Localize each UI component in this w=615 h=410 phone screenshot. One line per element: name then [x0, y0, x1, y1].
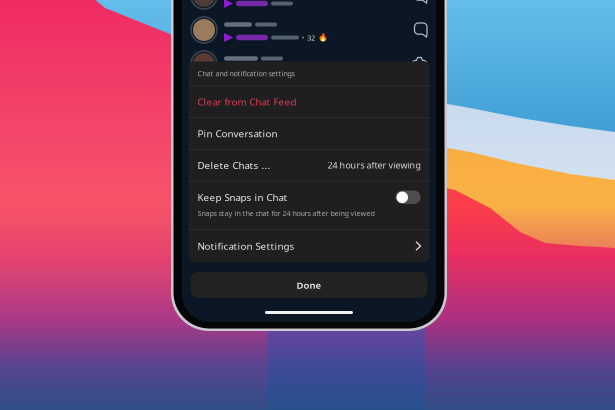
staticText: 24 hours after viewing — [327, 159, 420, 171]
button[interactable]: 32 — [182, 13, 436, 47]
staticText: Clear from Chat Feed — [197, 95, 296, 108]
button[interactable] — [182, 47, 436, 81]
staticText: Keep Snaps in Chat — [197, 191, 287, 204]
staticText: Notification Settings — [197, 239, 294, 252]
button[interactable] — [182, 81, 436, 115]
button[interactable]: Notification Settings — [188, 230, 429, 262]
button[interactable]: Keep Snaps in Chat — [188, 181, 429, 229]
button[interactable]: Delete Chats ... — [188, 150, 429, 181]
button[interactable] — [182, 0, 436, 13]
staticText: Pin Conversation — [197, 127, 277, 140]
staticText: Snaps stay in the chat for 24 hours afte… — [197, 208, 374, 218]
staticText: Delete Chats ... — [197, 159, 270, 172]
staticText: 🔥 — [318, 33, 328, 42]
button[interactable]: Done — [190, 272, 427, 298]
staticText: 32 — [307, 32, 315, 42]
staticText: Done — [296, 279, 321, 291]
button[interactable]: Clear from Chat Feed — [188, 86, 429, 117]
staticText: Chat and notification settings — [197, 69, 294, 78]
button[interactable]: Pin Conversation — [188, 118, 429, 149]
